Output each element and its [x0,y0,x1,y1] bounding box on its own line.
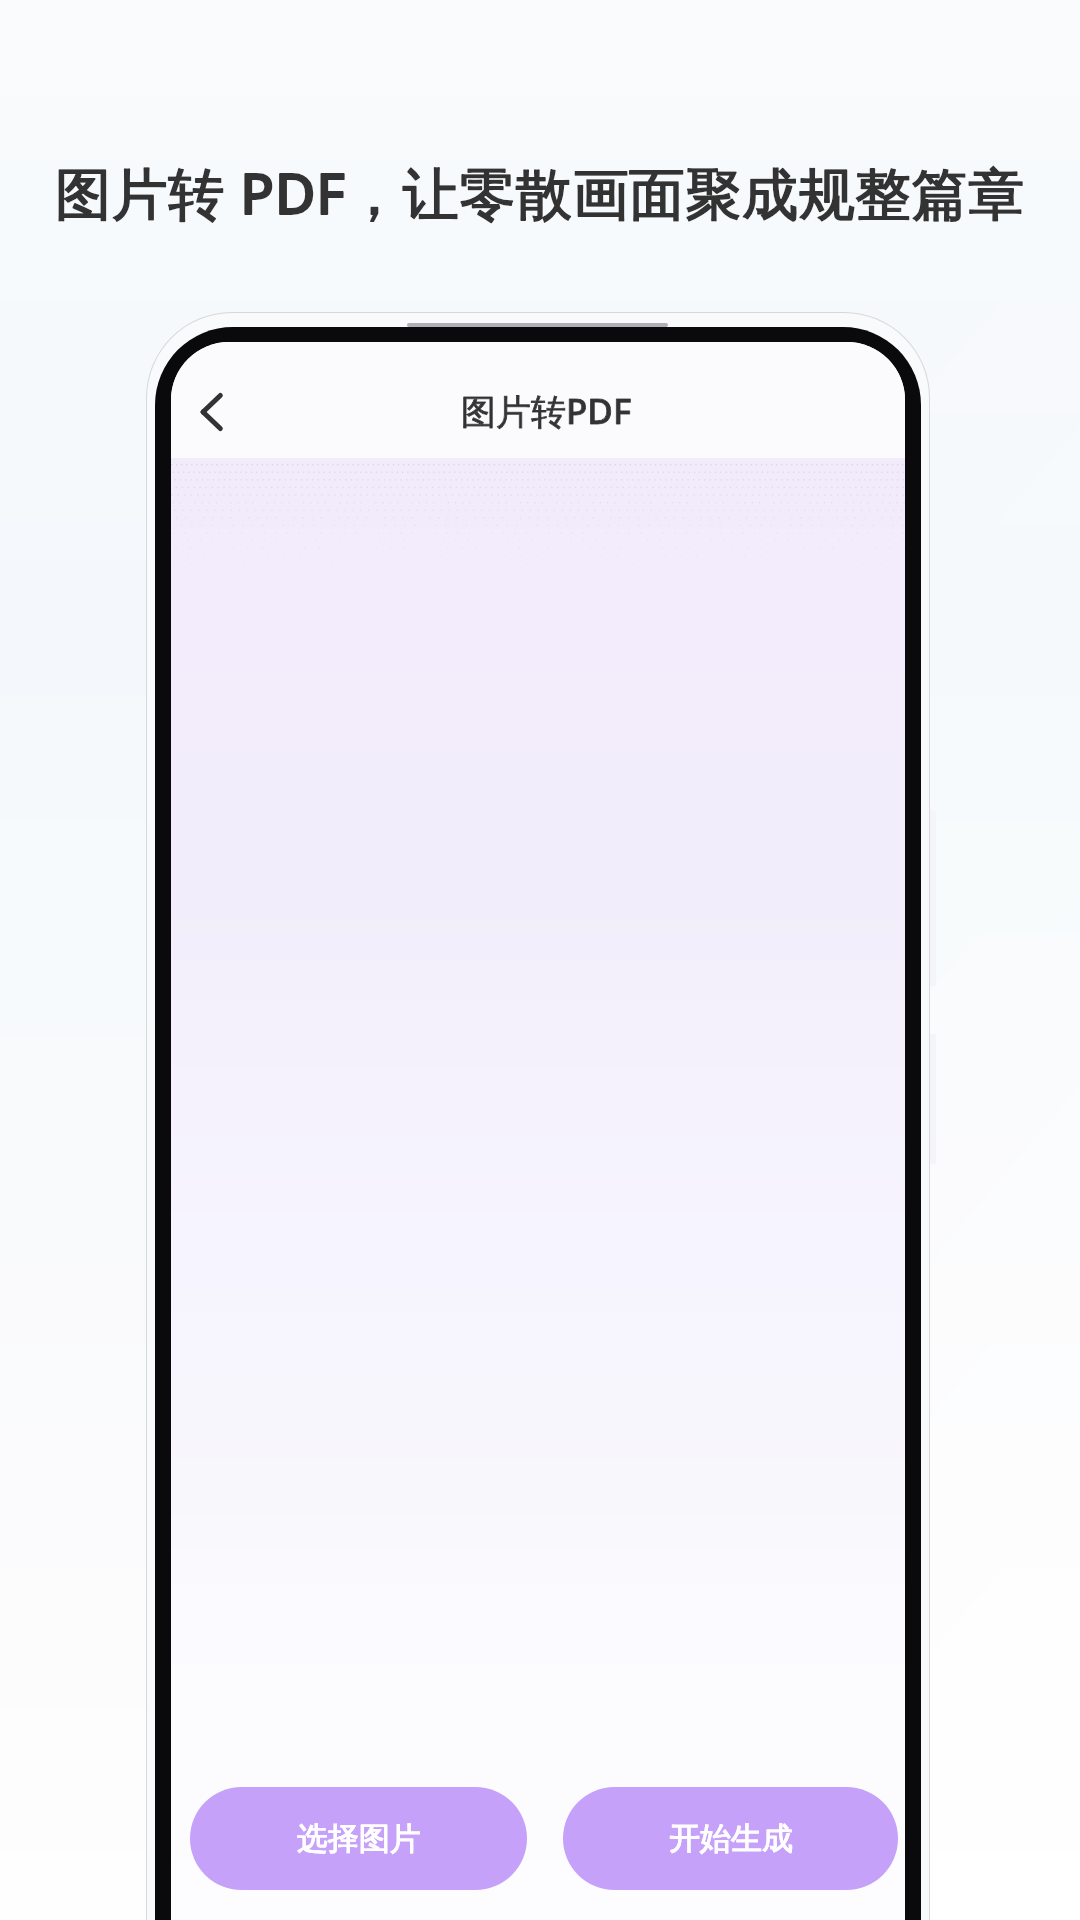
staticText: 选择图片 [297,1819,421,1858]
staticText: 图片转 PDF，让零散画面聚成规整篇章 [0,154,1080,230]
staticText: 图片转PDF [461,387,632,435]
staticText: 图片转 PDF，让零散画面聚成规整篇章 [0,154,1080,230]
button[interactable]: 选择图片 [190,1787,527,1890]
button[interactable]: Back [182,378,250,446]
staticText: 图片转PDF [461,387,632,435]
staticText: 开始生成 [669,1819,793,1858]
button[interactable]: 开始生成 [563,1787,898,1890]
staticText: 开始生成 [669,1819,793,1858]
staticText: 选择图片 [297,1819,421,1858]
